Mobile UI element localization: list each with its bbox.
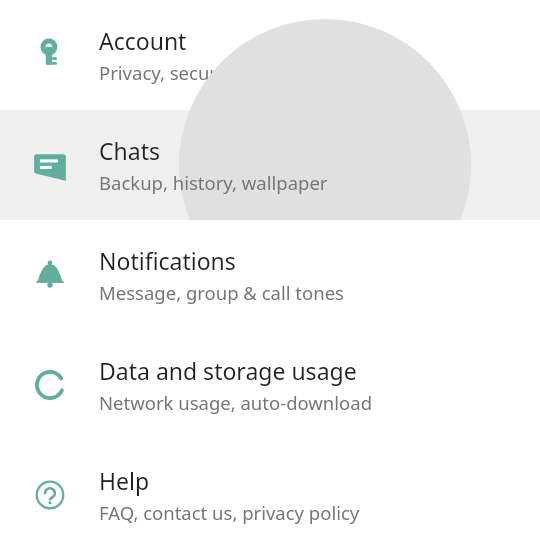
button[interactable]: Notifications [0,220,540,330]
staticText: Chats [99,135,160,166]
button[interactable]: Account [0,0,540,110]
staticText: FAQ, contact us, privacy policy [99,500,360,525]
staticText: Help [99,465,150,496]
button[interactable]: Data and storage usage [0,330,540,440]
staticText: Notifications [99,245,236,276]
staticText: Account [99,25,187,56]
staticText: Message, group & call tones [99,280,344,305]
staticText: Data and storage usage [99,355,357,386]
button[interactable]: Chats [0,110,540,220]
button[interactable]: Help [0,440,540,550]
staticText: Privacy, security, change number [99,60,386,85]
staticText: Network usage, auto-download [99,390,373,415]
staticText: Backup, history, wallpaper [99,170,328,195]
